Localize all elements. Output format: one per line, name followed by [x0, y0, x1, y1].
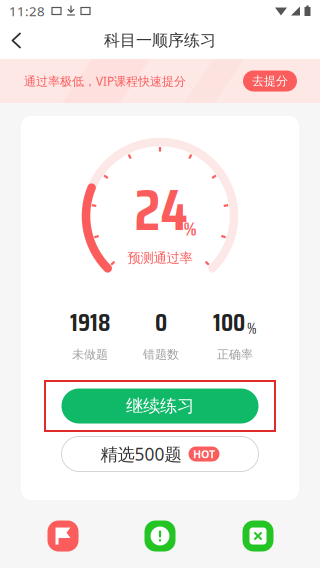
- staticText: 去提分: [252, 74, 288, 88]
- staticText: 24: [134, 165, 187, 255]
- staticText: HOT: [193, 447, 215, 461]
- button[interactable]: Mistakes: [144, 520, 175, 551]
- staticText: 0: [155, 302, 167, 342]
- staticText: %: [183, 214, 196, 244]
- button[interactable]: 精选500题: [61, 436, 258, 471]
- staticText: 错题数: [143, 347, 179, 362]
- staticText: 未做题: [72, 347, 108, 362]
- staticText: 100: [213, 302, 245, 342]
- staticText: 精选500题: [100, 442, 181, 465]
- staticText: 继续练习: [126, 395, 194, 417]
- staticText: 1918: [70, 302, 110, 342]
- staticText: %: [247, 317, 257, 340]
- staticText: 预测通过率: [127, 250, 192, 266]
- button[interactable]: Exam paper: [242, 520, 273, 551]
- staticText: 通过率极低，VIP课程快速提分: [24, 73, 186, 89]
- button[interactable]: 去提分: [243, 70, 297, 91]
- button[interactable]: Report question: [47, 520, 78, 551]
- button[interactable]: 继续练习: [61, 388, 258, 423]
- button[interactable]: Back: [0, 22, 36, 59]
- staticText: 11:28: [9, 2, 45, 20]
- staticText: 科目一顺序练习: [104, 31, 216, 50]
- staticText: 正确率: [217, 347, 253, 362]
